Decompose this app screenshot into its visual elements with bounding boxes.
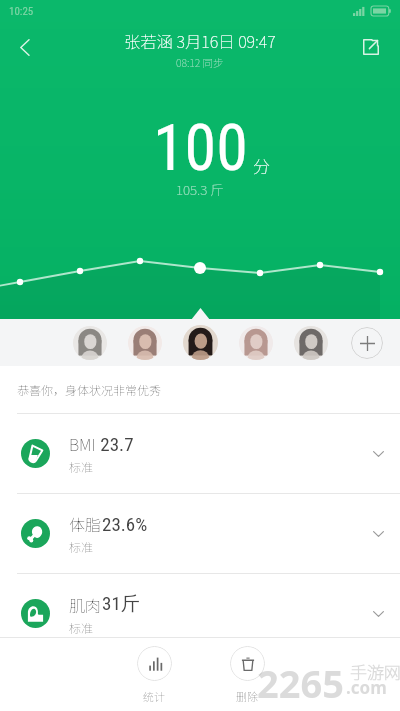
staticText: 肌肉 <box>69 593 102 616</box>
staticText: 100 <box>153 111 248 186</box>
button[interactable]: 肌肉 <box>0 574 400 653</box>
staticText: 2265 <box>257 657 344 709</box>
staticText: 统计 <box>143 688 165 704</box>
staticText: 标准 <box>69 619 94 636</box>
staticText: 08:12 同步 <box>176 55 224 70</box>
button[interactable]: Member 3 <box>183 325 218 360</box>
staticText: .com <box>346 676 387 699</box>
staticText: 手游网 <box>350 659 400 684</box>
button[interactable]: 删除 <box>221 646 273 704</box>
button[interactable]: 统计 <box>128 646 180 704</box>
staticText: 标准 <box>69 538 94 555</box>
staticText: 分 <box>253 153 270 178</box>
staticText: 删除 <box>236 688 258 704</box>
staticText: 23.6% <box>102 513 148 535</box>
staticText: 恭喜你，身体状况非常优秀 <box>17 381 162 398</box>
staticText: 105.3 斤 <box>176 179 224 199</box>
button[interactable]: Share <box>349 25 393 69</box>
button[interactable]: Member 2 <box>128 326 162 360</box>
button[interactable]: Member 4 <box>239 326 273 360</box>
staticText: 10:25 <box>9 5 34 18</box>
staticText: BMI <box>69 432 96 455</box>
button[interactable]: Member 1 <box>73 326 107 360</box>
staticText: 31斤 <box>102 592 140 616</box>
staticText: 张若涵 3月16日 09:47 <box>124 29 276 53</box>
button[interactable]: Member 5 <box>294 326 328 360</box>
button[interactable]: Back <box>3 25 47 69</box>
button[interactable]: Add member <box>351 327 383 359</box>
staticText: 体脂 <box>69 512 102 535</box>
button[interactable]: 体脂 <box>0 494 400 573</box>
staticText: 23.7 <box>96 433 134 455</box>
staticText: 标准 <box>69 458 94 475</box>
button[interactable]: BMI <box>0 414 400 493</box>
